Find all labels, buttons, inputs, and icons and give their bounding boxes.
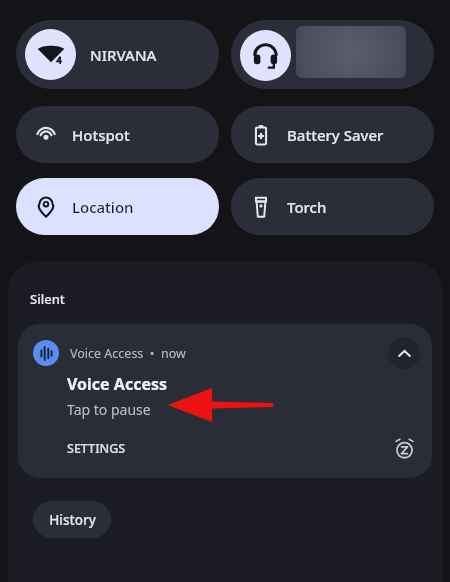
button[interactable] <box>231 20 434 89</box>
staticText: Silent <box>30 290 65 308</box>
button[interactable]: Location <box>16 178 219 235</box>
button[interactable]: History <box>33 501 111 538</box>
staticText: Torch <box>287 197 327 217</box>
button[interactable]: Battery Saver <box>231 106 434 163</box>
staticText: Location <box>72 197 134 217</box>
button[interactable]: NIRVANA <box>16 20 219 89</box>
button[interactable]: SETTINGS <box>58 435 135 462</box>
button[interactable]: Snooze <box>388 432 420 464</box>
staticText: SETTINGS <box>67 440 126 457</box>
button[interactable]: Voice Access • now <box>18 324 432 478</box>
staticText: History <box>49 511 96 529</box>
button[interactable]: Hotspot <box>16 106 219 163</box>
button[interactable]: Torch <box>231 178 434 235</box>
staticText: NIRVANA <box>90 45 157 65</box>
staticText: Voice Access • now <box>70 345 186 362</box>
staticText: Hotspot <box>72 125 130 145</box>
button[interactable]: Collapse notification <box>388 337 420 369</box>
staticText: Tap to pause <box>67 400 151 419</box>
staticText: Voice Access <box>67 373 168 395</box>
staticText: Battery Saver <box>287 125 384 145</box>
